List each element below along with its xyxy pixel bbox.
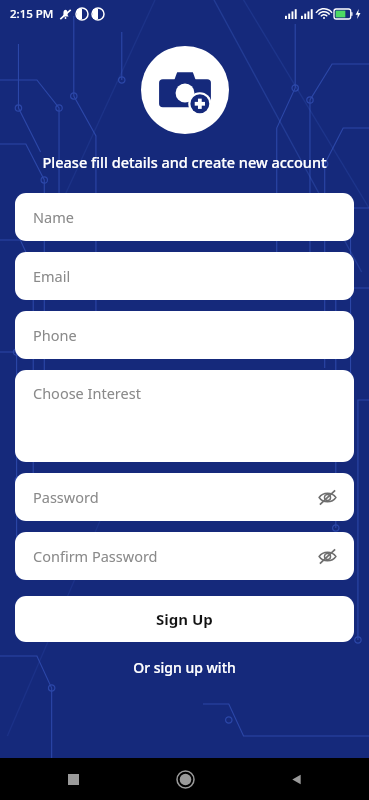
staticText: Password [33,487,99,507]
staticText: Confirm Password [33,546,158,566]
staticText: Sign Up [156,609,213,629]
button[interactable]: Choose Interest [15,370,354,462]
button[interactable]: Name [15,193,354,241]
staticText: Choose Interest [33,383,141,403]
button[interactable]: Toggle password visibility [314,543,340,569]
staticText: Email [33,266,71,286]
staticText: 2:15 PM [10,6,54,22]
button[interactable]: Email [15,252,354,300]
staticText: Name [33,207,74,227]
button[interactable]: Back [279,762,313,796]
button[interactable]: Toggle password visibility [314,484,340,510]
button[interactable]: Password [15,473,354,521]
staticText: Phone [33,325,77,345]
button[interactable]: Recent apps [56,762,90,796]
staticText: Please fill details and create new accou… [0,152,369,172]
button[interactable]: Add profile photo [141,46,229,134]
button[interactable]: Phone [15,311,354,359]
button[interactable]: Home [168,762,202,796]
button[interactable]: Confirm Password [15,532,354,580]
button[interactable]: Sign Up [15,596,354,642]
staticText: Or sign up with [0,658,369,677]
